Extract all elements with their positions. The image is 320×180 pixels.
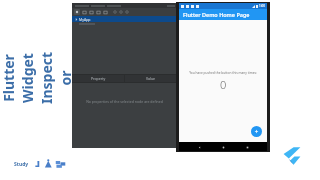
button[interactable]: Toolbar action 2 [89,10,94,15]
button[interactable]: Recents [243,143,251,151]
staticText: Property [91,76,106,81]
button[interactable]: Select widget mode [74,9,80,15]
staticText: No properties of the selected node are d… [86,99,163,104]
button[interactable]: Toolbar action 4 [103,10,108,15]
staticText: 0 [220,77,227,92]
staticText: 1:00 [259,4,265,8]
staticText: You have pushed the button this many tim… [189,71,257,75]
staticText: Value [146,76,156,81]
button[interactable]: Flutter logo [282,146,302,166]
button[interactable]: Toolbar action 1 [82,10,87,15]
staticText: Study [14,161,29,168]
button[interactable]: Home [219,143,227,151]
staticText: MyApp [79,17,91,22]
button[interactable]: MyApp [72,16,177,22]
staticText: Flutter Widget Inspector [0,51,75,105]
button[interactable]: Toolbar action 3 [96,10,101,15]
button[interactable]: Increment [251,126,262,137]
button[interactable]: Back [195,143,203,151]
staticText: Flutter Demo Home Page [183,11,250,18]
